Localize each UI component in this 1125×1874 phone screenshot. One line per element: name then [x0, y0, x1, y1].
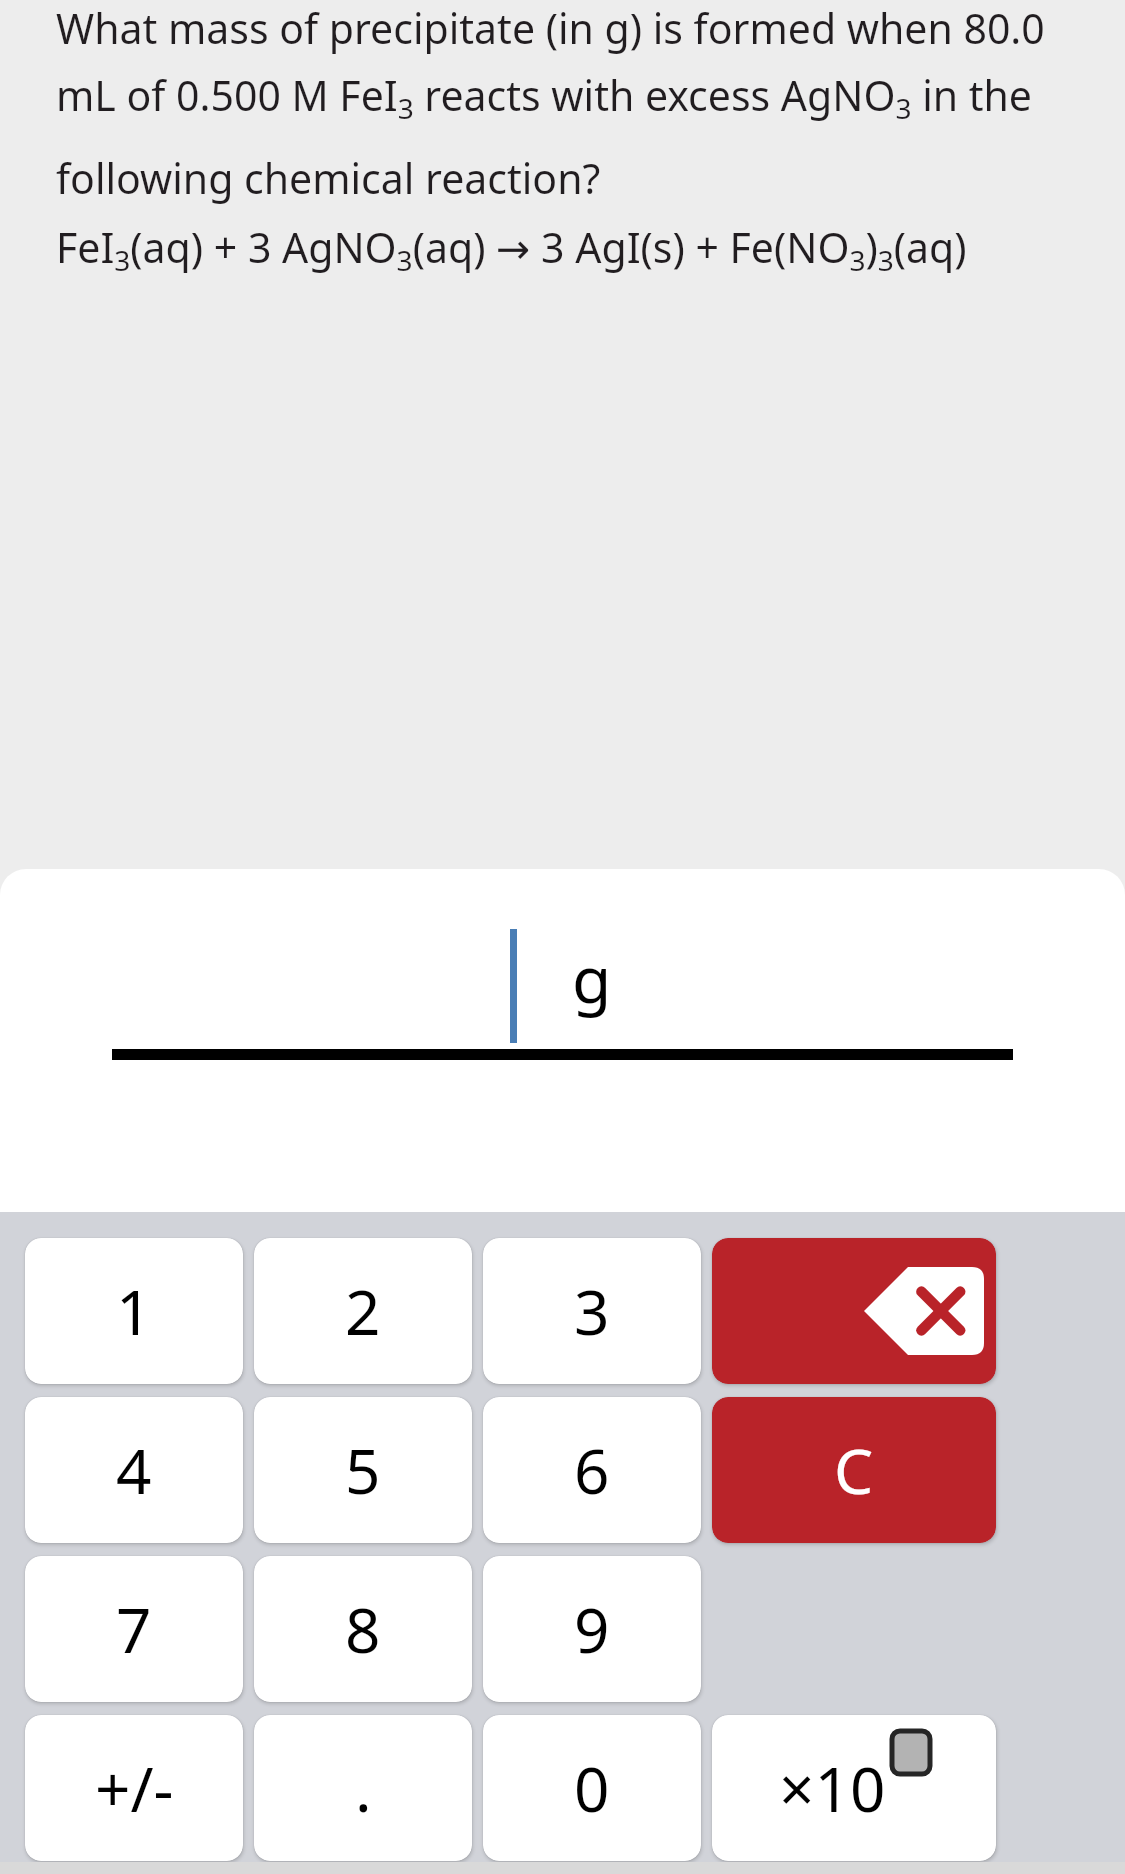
button[interactable]: 3 — [483, 1238, 701, 1384]
staticText: +/- — [95, 1746, 174, 1830]
button[interactable]: 2 — [254, 1238, 472, 1384]
button[interactable]: Backspace — [712, 1238, 996, 1384]
staticText: 9 — [574, 1587, 610, 1671]
button[interactable]: 9 — [483, 1556, 701, 1702]
staticText: 5 — [345, 1428, 381, 1512]
staticText: . — [355, 1746, 372, 1830]
staticText: 6 — [574, 1428, 610, 1512]
staticText: 0 — [574, 1746, 610, 1830]
button[interactable]: 4 — [25, 1397, 243, 1543]
staticText: ×10 — [779, 1746, 886, 1830]
button[interactable]: 7 — [25, 1556, 243, 1702]
button[interactable]: 8 — [254, 1556, 472, 1702]
staticText: g — [572, 935, 612, 1022]
staticText: C — [834, 1428, 874, 1512]
staticText: 7 — [116, 1587, 152, 1671]
staticText: 3 — [574, 1269, 610, 1353]
button[interactable]: 0 — [483, 1715, 701, 1861]
button[interactable]: 5 — [254, 1397, 472, 1543]
staticText: 8 — [345, 1587, 381, 1671]
button[interactable]: . — [254, 1715, 472, 1861]
staticText: 1 — [116, 1269, 152, 1353]
staticText: What mass of precipitate (in g) is forme… — [56, 0, 1081, 279]
staticText: 2 — [345, 1269, 381, 1353]
button[interactable]: C — [712, 1397, 996, 1543]
button[interactable]: Times ten to the power — [712, 1715, 996, 1861]
button[interactable]: g — [0, 869, 1125, 1212]
button[interactable]: 6 — [483, 1397, 701, 1543]
staticText: 4 — [116, 1428, 152, 1512]
button[interactable]: 1 — [25, 1238, 243, 1384]
button[interactable]: +/- — [25, 1715, 243, 1861]
